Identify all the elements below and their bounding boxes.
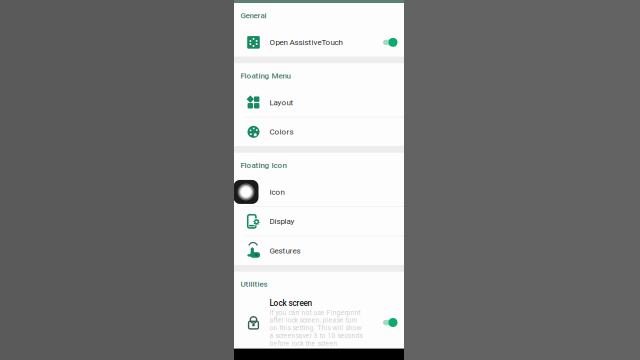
staticText: after lock screen, please turn [269,316,357,324]
staticText: If you can not use Fingerprint [269,309,360,316]
staticText: Layout [269,98,293,107]
staticText: Icon [269,187,284,197]
staticText: Gestures [269,246,300,255]
staticText: a screensaver 3 to 10 seconds [269,332,362,340]
button[interactable]: Open AssistiveTouch [234,28,404,57]
button[interactable]: Display [234,207,404,236]
staticText: on this setting. This will show [269,324,361,332]
staticText: Lock screen [269,298,312,308]
button[interactable]: Colors [234,117,404,146]
staticText: General [240,11,266,20]
button[interactable]: Gestures [234,236,404,265]
staticText: before lock the screen [269,339,337,347]
staticText: Floating Menu [240,71,290,80]
button[interactable]: Lock screen [234,296,404,348]
staticText: Colors [269,127,293,137]
button[interactable]: Icon [234,178,404,206]
staticText: Floating Icon [240,160,286,170]
button[interactable]: Layout [234,88,404,117]
staticText: Display [269,217,294,226]
staticText: Utilities [240,279,267,289]
staticText: Open AssistiveTouch [269,38,342,47]
